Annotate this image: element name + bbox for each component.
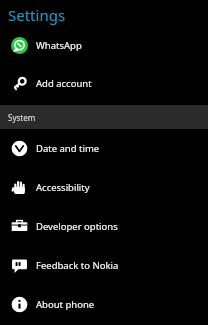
button[interactable]: Accessibility — [0, 168, 208, 207]
staticText: Feedback to Nokia — [36, 259, 119, 272]
button[interactable]: WhatsApp — [0, 26, 208, 64]
staticText: Add account — [36, 77, 92, 90]
button[interactable]: About phone — [0, 285, 208, 324]
staticText: Accessibility — [36, 181, 90, 194]
staticText: Developer options — [36, 220, 118, 233]
button[interactable]: Date and time — [0, 129, 208, 168]
staticText: WhatsApp — [36, 39, 82, 52]
staticText: Settings — [8, 5, 66, 25]
staticText: Date and time — [36, 142, 100, 155]
button[interactable]: Developer options — [0, 207, 208, 246]
staticText: System — [8, 112, 36, 123]
button[interactable]: Feedback to Nokia — [0, 246, 208, 285]
staticText: About phone — [36, 298, 95, 311]
button[interactable]: Add account — [0, 64, 208, 102]
